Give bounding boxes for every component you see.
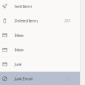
staticText: Junk Email — [14, 76, 32, 81]
staticText: Inbox — [14, 47, 23, 52]
staticText: Junk — [14, 62, 21, 67]
button[interactable]: Deleted Items — [0, 14, 80, 28]
button[interactable]: Sent Items — [0, 0, 80, 13]
button[interactable]: Inbox — [0, 28, 80, 42]
button[interactable]: Junk Email — [0, 72, 80, 85]
button[interactable]: Junk — [0, 57, 80, 71]
staticText: Deleted Items — [14, 18, 38, 23]
staticText: Inbox — [14, 33, 23, 38]
staticText: Sent Items — [14, 3, 32, 9]
button[interactable]: Inbox — [0, 43, 80, 57]
staticText: 287 — [64, 18, 70, 23]
